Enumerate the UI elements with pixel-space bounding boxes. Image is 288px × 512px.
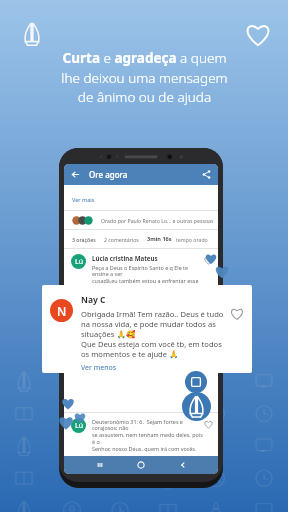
staticText: Lú (75, 421, 83, 431)
button[interactable]: Recentes (94, 459, 106, 471)
staticText: Lú (75, 257, 83, 267)
staticText: Lúcia cristina Mateus (92, 254, 158, 262)
staticText: Curta e agradeça a quem lhe deixou uma m… (15, 49, 274, 106)
staticText: Ver mais (92, 309, 114, 316)
staticText: Ore agora (89, 169, 128, 180)
button[interactable]: N (42, 285, 252, 373)
button[interactable]: Voltar (177, 459, 189, 471)
staticText: Deuteronômio 31: 6. Sejam fortes e coraj… (92, 418, 204, 452)
staticText: Obrigada Irmã! Tem razão.. Deus é tudo n… (81, 309, 224, 359)
staticText: Orado por Paulo Renato Lo... e outras pe… (101, 217, 214, 224)
button[interactable]: Início (135, 459, 147, 471)
button[interactable]: Lú (71, 254, 213, 316)
staticText: tempo orado (176, 236, 208, 243)
button[interactable]: Compartilhar (201, 169, 212, 180)
button[interactable]: Curtir (204, 256, 213, 265)
staticText: 2 comentários (104, 236, 139, 243)
button[interactable]: Curtir (204, 420, 213, 429)
button[interactable]: Lú (71, 418, 213, 452)
staticText: Nay C (81, 294, 106, 306)
button[interactable]: Voltar (70, 169, 81, 180)
button[interactable]: Curtir (230, 307, 244, 321)
button[interactable]: Nova mensagem (185, 371, 207, 393)
staticText: 3 orações (72, 236, 96, 243)
button[interactable]: Orar (18, 20, 46, 48)
button[interactable]: Favoritos (244, 20, 272, 48)
staticText: 3min 16s (147, 235, 172, 243)
button[interactable]: Orar agora (182, 392, 211, 421)
staticText: Peça a Deus o Espírito Santo e q Ele te … (92, 264, 204, 306)
staticText: Ver mais (72, 196, 95, 203)
staticText: N (57, 303, 67, 319)
staticText: Ver menos (81, 363, 117, 373)
